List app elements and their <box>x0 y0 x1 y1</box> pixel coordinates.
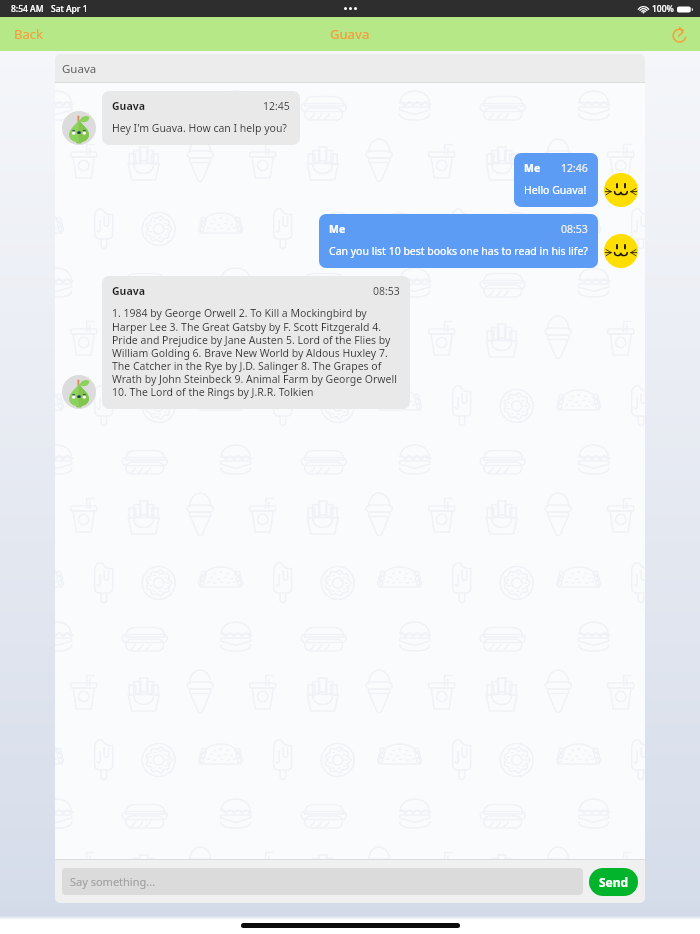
button[interactable]: Back <box>0 17 57 51</box>
staticText: Can you list 10 best books one has to re… <box>329 244 588 258</box>
staticText: 08:53 <box>561 222 588 236</box>
staticText: Send <box>599 874 629 890</box>
button[interactable]: Refresh <box>659 17 700 51</box>
button[interactable]: Guava <box>102 91 300 145</box>
staticText: Sat Apr 1 <box>51 3 88 15</box>
staticText: Me <box>524 161 541 175</box>
button[interactable]: Me <box>319 214 598 268</box>
staticText: Guava <box>330 25 370 43</box>
staticText: Hey I'm Guava. How can I help you? <box>112 121 287 135</box>
staticText: Say something... <box>70 874 156 889</box>
staticText: Back <box>14 25 43 43</box>
staticText: Guava <box>112 284 146 298</box>
button[interactable]: Me <box>514 153 598 207</box>
staticText: Guava <box>62 61 97 77</box>
staticText: Hello Guava! <box>524 183 587 197</box>
button[interactable]: Send <box>589 868 638 896</box>
staticText: Me <box>329 222 346 236</box>
button[interactable]: Say something... <box>62 868 583 895</box>
staticText: 08:53 <box>373 284 400 298</box>
staticText: 100% <box>652 3 674 15</box>
staticText: 1. 1984 by George Orwell 2. To Kill a Mo… <box>112 306 400 399</box>
staticText: 12:45 <box>263 99 290 113</box>
button[interactable]: Guava <box>102 276 410 409</box>
staticText: Guava <box>112 99 146 113</box>
staticText: 8:54 AM <box>11 3 44 15</box>
staticText: 12:46 <box>561 161 588 175</box>
